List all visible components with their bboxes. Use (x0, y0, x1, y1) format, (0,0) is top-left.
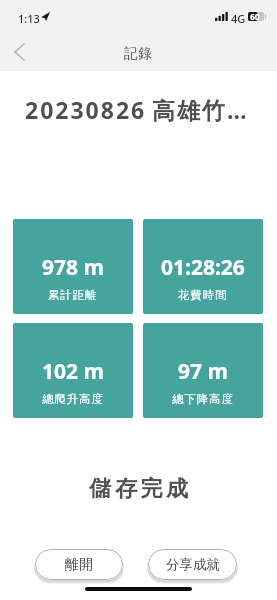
staticText: 60 (250, 11, 260, 20)
button[interactable]: 978 m (13, 219, 133, 314)
staticText: 記錄 (124, 45, 152, 63)
button[interactable]: 102 m (13, 323, 133, 418)
staticText: 分享成就 (166, 556, 220, 573)
staticText: 花費時間 (178, 288, 228, 302)
button[interactable]: 97 m (143, 323, 263, 418)
staticText: 97 m (178, 357, 228, 386)
staticText: 1:13 (18, 11, 40, 26)
button[interactable]: 01:28:26 (143, 219, 263, 314)
staticText: 累計距離 (48, 288, 98, 302)
staticText: 20230826 高雄竹… (25, 94, 249, 125)
staticText: 978 m (42, 253, 104, 282)
staticText: 總下降高度 (172, 392, 234, 406)
button[interactable]: 離開 (35, 549, 123, 580)
button[interactable]: Back (3, 36, 35, 68)
staticText: 儲存完成 (2, 475, 277, 503)
staticText: 總爬升高度 (42, 392, 104, 406)
staticText: 102 m (42, 357, 104, 386)
staticText: 離開 (65, 556, 93, 574)
button[interactable]: 分享成就 (148, 549, 237, 580)
staticText: 4G (231, 11, 246, 26)
staticText: 01:28:26 (161, 253, 245, 282)
